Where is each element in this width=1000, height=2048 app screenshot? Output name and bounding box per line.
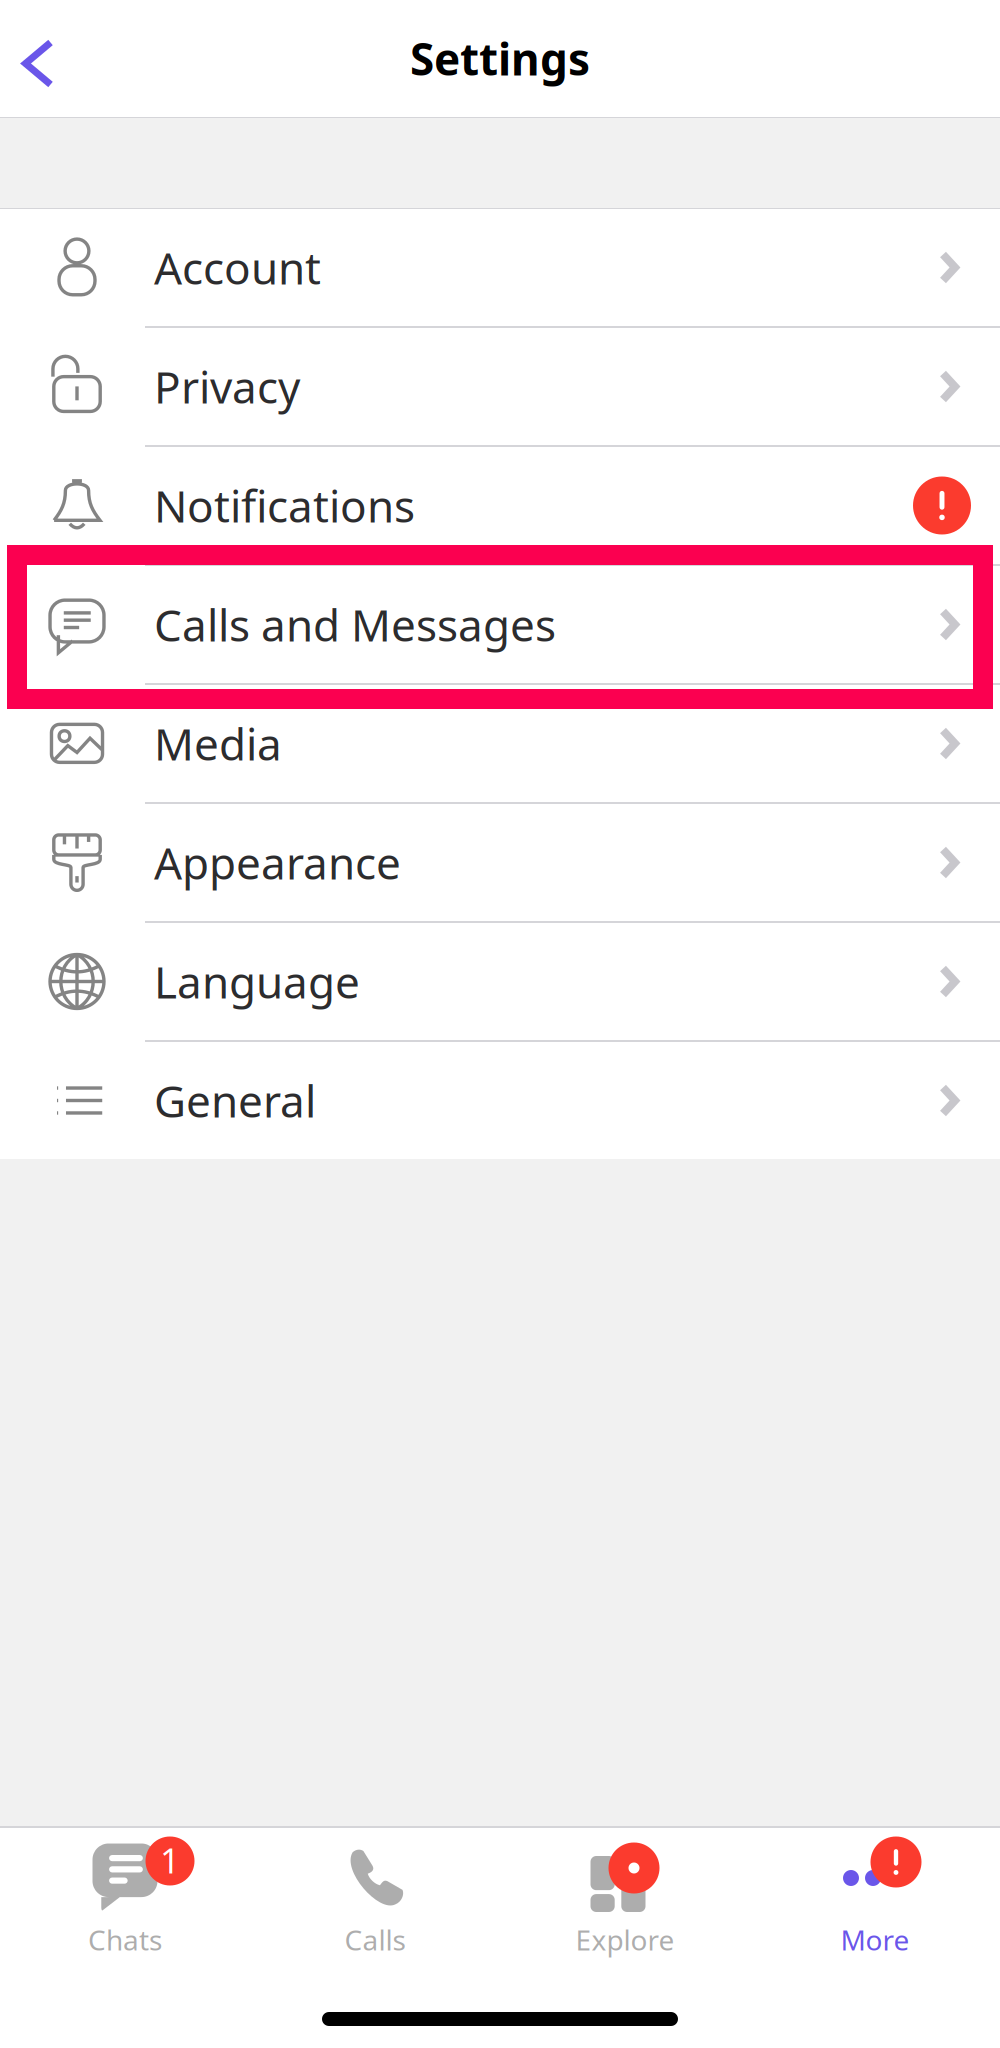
button[interactable]: Calls [250,1827,500,2048]
button[interactable]: Explore [500,1827,750,2048]
staticText: Media [154,714,282,773]
staticText: Calls [344,1921,405,1958]
staticText: Privacy [154,357,300,416]
button[interactable]: Appearance [0,804,1000,923]
staticText: Appearance [154,833,401,892]
staticText: Calls and Messages [154,595,556,654]
staticText: General [154,1071,316,1130]
staticText: Chats [88,1921,162,1958]
button[interactable]: More [750,1827,1000,2048]
button[interactable]: Notifications [0,447,1000,566]
button[interactable]: General [0,1042,1000,1159]
staticText: Language [154,952,360,1011]
button[interactable]: Account [0,209,1000,328]
staticText: Notifications [154,476,415,535]
button[interactable]: Calls and Messages [0,566,1000,685]
button[interactable]: Privacy [0,328,1000,447]
staticText: Explore [575,1921,674,1958]
staticText: Settings [410,29,590,88]
button[interactable]: Back [0,0,76,117]
button[interactable]: Media [0,685,1000,804]
staticText: More [840,1921,909,1958]
button[interactable]: 1 [0,1827,250,2048]
staticText: 1 [160,1837,180,1883]
button[interactable]: Language [0,923,1000,1042]
staticText: Account [154,238,321,297]
